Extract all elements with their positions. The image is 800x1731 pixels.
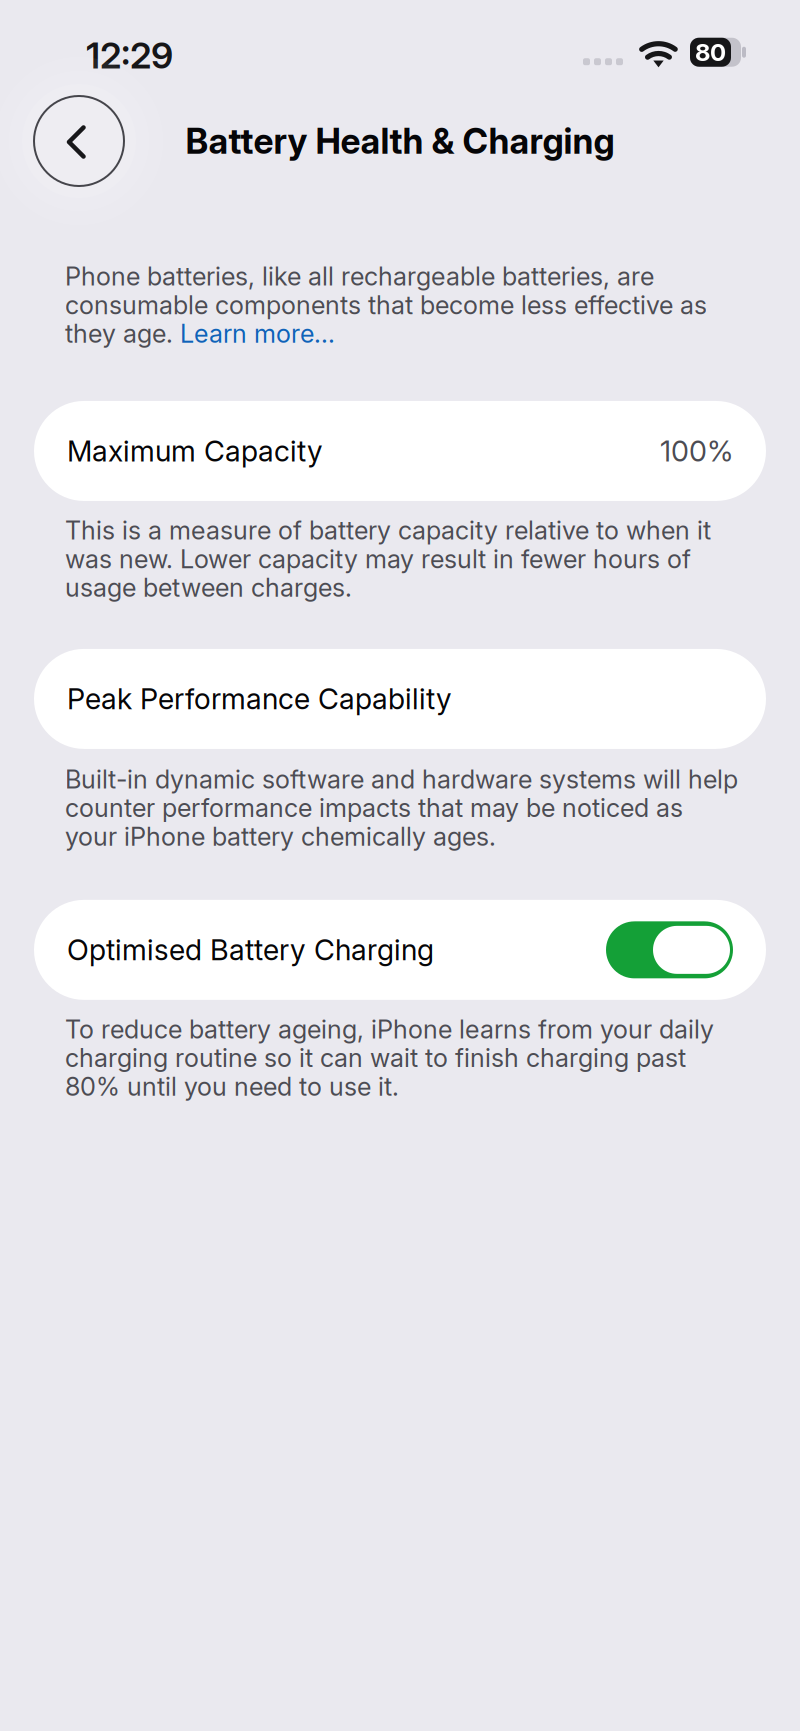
staticText: To reduce battery ageing, iPhone learns … — [65, 1014, 714, 1102]
button[interactable]: Peak Performance Capability — [34, 649, 766, 749]
staticText: Peak Performance Capability — [67, 682, 452, 716]
button[interactable]: Optimised Battery Charging — [34, 900, 766, 1000]
staticText: Optimised Battery Charging — [67, 932, 434, 967]
button[interactable]: Maximum Capacity — [34, 401, 766, 501]
staticText: Battery Health & Charging — [185, 120, 614, 162]
button[interactable]: Optimised Battery Charging — [606, 921, 733, 978]
staticText: 100% — [660, 434, 733, 468]
staticText: Maximum Capacity — [67, 434, 323, 468]
staticText: This is a measure of battery capacity re… — [65, 515, 711, 603]
staticText: Built-in dynamic software and hardware s… — [65, 764, 738, 852]
staticText: 80 — [695, 38, 726, 67]
button[interactable]: Back — [34, 96, 124, 186]
staticText: Phone batteries, like all rechargeable b… — [65, 261, 707, 349]
staticText: 12:29 — [86, 34, 173, 77]
